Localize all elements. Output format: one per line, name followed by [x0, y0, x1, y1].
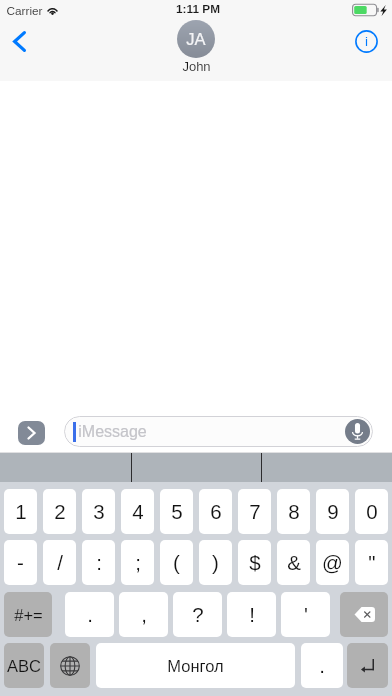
button[interactable]: .: [301, 643, 343, 688]
button[interactable]: Монгол: [96, 643, 295, 688]
staticText: 9: [327, 500, 339, 523]
staticText: 2: [54, 500, 66, 523]
button[interactable]: .: [65, 592, 114, 637]
button[interactable]: Details: [353, 28, 379, 54]
staticText: iMessage: [78, 423, 147, 441]
staticText: JA: [186, 30, 206, 48]
button[interactable]: !: [227, 592, 276, 637]
staticText: (: [173, 551, 180, 574]
staticText: 6: [210, 500, 222, 523]
button[interactable]: &: [277, 540, 310, 585]
button[interactable]: /: [43, 540, 76, 585]
button[interactable]: ): [199, 540, 232, 585]
button[interactable]: App drawer: [18, 421, 45, 445]
staticText: ?: [192, 603, 204, 626]
button[interactable]: iMessage: [64, 416, 373, 447]
staticText: :: [96, 551, 102, 574]
staticText: #+=: [14, 606, 43, 624]
button[interactable]: 4: [121, 489, 154, 534]
button[interactable]: 9: [316, 489, 349, 534]
button[interactable]: 0: [355, 489, 388, 534]
button[interactable]: Switch keyboard: [50, 643, 90, 688]
staticText: ,: [141, 603, 147, 626]
staticText: 5: [171, 500, 183, 523]
staticText: $: [249, 551, 261, 574]
button[interactable]: 7: [238, 489, 271, 534]
staticText: ): [212, 551, 219, 574]
staticText: !: [249, 603, 255, 626]
staticText: 0: [366, 500, 378, 523]
staticText: .: [87, 603, 93, 626]
staticText: -: [17, 551, 24, 574]
button[interactable]: ": [355, 540, 388, 585]
staticText: 1: [15, 500, 27, 523]
staticText: ': [304, 603, 308, 626]
button[interactable]: Record audio message: [345, 419, 370, 444]
button[interactable]: Backspace: [340, 592, 388, 637]
staticText: Монгол: [167, 657, 224, 675]
staticText: &: [287, 551, 301, 574]
staticText: 1:11 PM: [176, 2, 220, 15]
button[interactable]: 2: [43, 489, 76, 534]
button[interactable]: -: [4, 540, 37, 585]
button[interactable]: 1: [4, 489, 37, 534]
staticText: 3: [93, 500, 105, 523]
button[interactable]: 5: [160, 489, 193, 534]
button[interactable]: 3: [82, 489, 115, 534]
button[interactable]: @: [316, 540, 349, 585]
button[interactable]: (: [160, 540, 193, 585]
button[interactable]: ,: [119, 592, 168, 637]
staticText: /: [57, 551, 63, 574]
button[interactable]: :: [82, 540, 115, 585]
button[interactable]: 6: [199, 489, 232, 534]
staticText: John: [182, 59, 211, 74]
button[interactable]: Return: [347, 643, 388, 688]
staticText: ABC: [7, 657, 41, 675]
button[interactable]: 8: [277, 489, 310, 534]
staticText: Carrier: [6, 4, 43, 17]
button[interactable]: Back: [8, 28, 31, 54]
staticText: 8: [288, 500, 300, 523]
staticText: .: [319, 654, 325, 677]
staticText: 7: [249, 500, 261, 523]
button[interactable]: ': [281, 592, 330, 637]
staticText: @: [322, 551, 343, 574]
staticText: 4: [132, 500, 144, 523]
button[interactable]: ;: [121, 540, 154, 585]
button[interactable]: #+=: [4, 592, 52, 637]
button[interactable]: JA: [177, 20, 215, 74]
button[interactable]: $: [238, 540, 271, 585]
button[interactable]: ?: [173, 592, 222, 637]
staticText: ": [368, 551, 376, 574]
staticText: ;: [135, 551, 141, 574]
staticText: i: [365, 34, 368, 49]
button[interactable]: ABC: [4, 643, 44, 688]
